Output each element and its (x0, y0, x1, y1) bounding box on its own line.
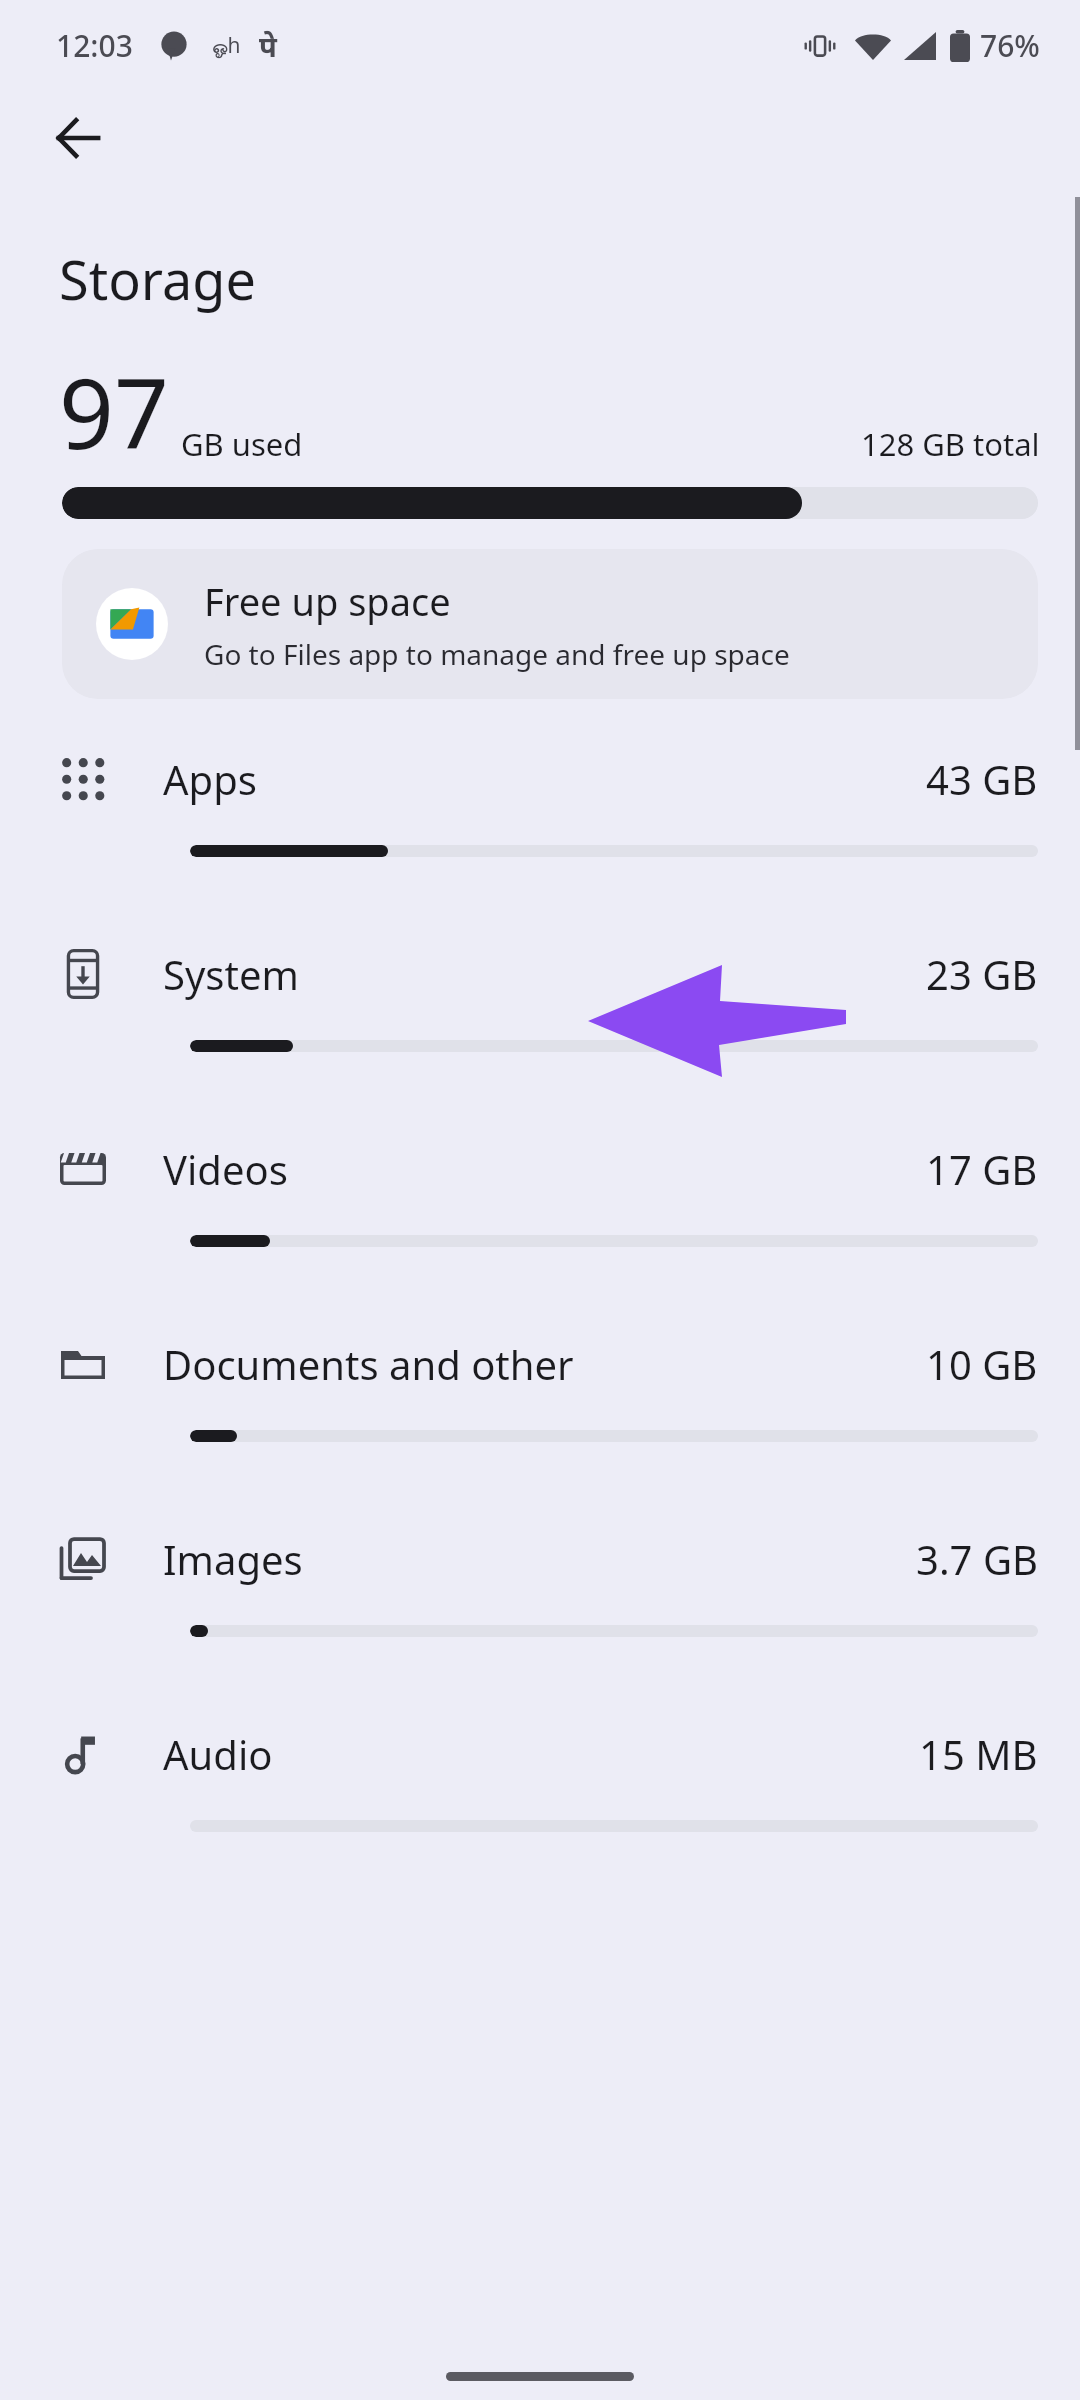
staticText: पे (259, 26, 277, 65)
staticText: 17 GB (926, 1142, 1038, 1196)
staticText: Go to Files app to manage and free up sp… (204, 635, 790, 673)
staticText: Free up space (204, 575, 451, 627)
staticText: 10 GB (926, 1337, 1038, 1391)
staticText: 43 GB (926, 752, 1038, 806)
staticText: 23 GB (926, 947, 1038, 1001)
staticText: Images (163, 1532, 916, 1586)
staticText: 3.7 GB (916, 1532, 1038, 1586)
button[interactable]: Apps (0, 713, 1080, 908)
button[interactable]: System (0, 908, 1080, 1103)
staticText: Storage (59, 242, 256, 316)
button[interactable]: Images (0, 1493, 1080, 1688)
button[interactable]: Back (30, 90, 126, 186)
staticText: 76% (980, 25, 1040, 66)
staticText: System (163, 947, 926, 1001)
staticText: Apps (163, 752, 926, 806)
button[interactable]: Documents and other (0, 1298, 1080, 1493)
staticText: Audio (163, 1727, 919, 1781)
staticText: ஓh (211, 31, 241, 60)
staticText: Documents and other (163, 1337, 926, 1391)
staticText: 128 GB total (861, 423, 1040, 465)
staticText: 15 MB (919, 1727, 1038, 1781)
button[interactable]: Audio (0, 1688, 1080, 1883)
staticText: 97 (59, 346, 169, 477)
button[interactable]: Free up space (62, 549, 1038, 699)
staticText: GB used (181, 423, 303, 465)
staticText: 12:03 (56, 25, 133, 66)
staticText: Videos (163, 1142, 926, 1196)
button[interactable]: Videos (0, 1103, 1080, 1298)
